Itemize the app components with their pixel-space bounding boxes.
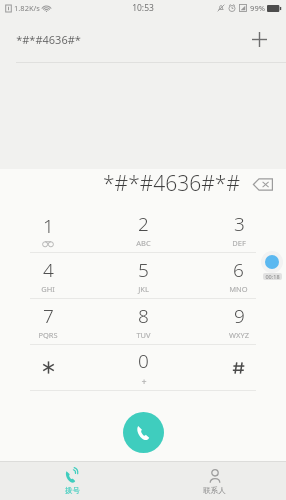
- staticText: 5: [138, 257, 149, 283]
- button[interactable]: 3: [191, 207, 286, 252]
- staticText: 6: [233, 257, 244, 283]
- staticText: MNO: [229, 284, 248, 294]
- staticText: 1: [43, 213, 54, 239]
- button[interactable]: 9: [191, 299, 286, 344]
- button[interactable]: 0: [96, 345, 191, 390]
- staticText: 7: [43, 303, 54, 329]
- button[interactable]: Backspace: [250, 171, 276, 197]
- staticText: ABC: [136, 238, 151, 248]
- staticText: 00:18: [265, 273, 280, 280]
- staticText: 1.82K/s: [14, 3, 40, 13]
- staticText: 2: [138, 211, 149, 237]
- staticText: *#*#4636#*#: [103, 169, 240, 198]
- staticText: *#*#4636#*: [16, 32, 81, 47]
- button[interactable]: 1: [0, 207, 96, 252]
- button[interactable]: 6: [191, 253, 286, 298]
- button[interactable]: 7: [0, 299, 96, 344]
- staticText: 拨号: [65, 486, 80, 495]
- button[interactable]: Add contact: [246, 26, 272, 52]
- staticText: DEF: [232, 238, 246, 248]
- staticText: WXYZ: [229, 330, 249, 340]
- button[interactable]: 拨号: [0, 462, 143, 500]
- button[interactable]: [191, 345, 286, 390]
- button[interactable]: Call: [123, 412, 164, 453]
- button[interactable]: 2: [96, 207, 191, 252]
- staticText: 0: [138, 348, 149, 374]
- staticText: 8: [138, 303, 149, 329]
- button[interactable]: *#*#4636#*: [0, 16, 286, 62]
- staticText: 9: [234, 303, 245, 329]
- staticText: PQRS: [38, 330, 58, 340]
- staticText: 99%: [250, 3, 265, 13]
- button[interactable]: 联系人: [143, 462, 286, 500]
- button[interactable]: [0, 345, 96, 390]
- staticText: TUV: [136, 330, 151, 340]
- staticText: JKL: [138, 284, 149, 294]
- button[interactable]: 8: [96, 299, 191, 344]
- staticText: 联系人: [203, 486, 226, 495]
- button[interactable]: 4: [0, 253, 96, 298]
- button[interactable]: 5: [96, 253, 191, 298]
- staticText: 10:53: [132, 2, 154, 14]
- staticText: GHI: [41, 284, 55, 294]
- staticText: 4: [43, 257, 54, 283]
- staticText: 3: [234, 211, 245, 237]
- staticText: +: [141, 375, 147, 387]
- button[interactable]: Recording timer: [261, 251, 283, 280]
